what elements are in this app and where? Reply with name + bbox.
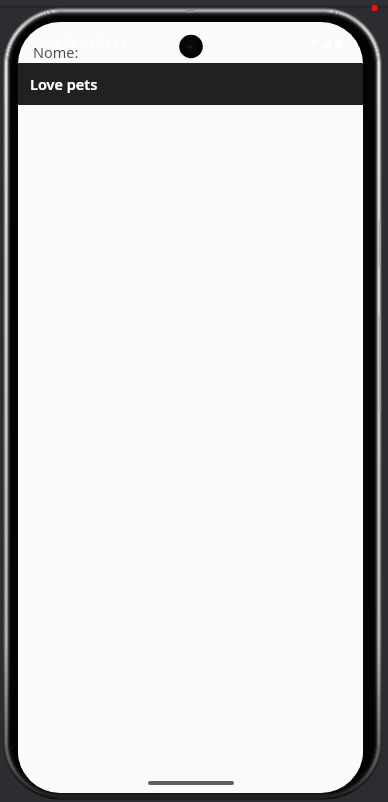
button[interactable]: Home bbox=[148, 781, 234, 785]
staticText: Love pets bbox=[30, 74, 98, 94]
button[interactable]: Love pets bbox=[18, 63, 363, 105]
staticText: Nome: bbox=[33, 42, 79, 62]
staticText: 4:25 bbox=[39, 35, 61, 50]
button[interactable] bbox=[18, 105, 363, 773]
